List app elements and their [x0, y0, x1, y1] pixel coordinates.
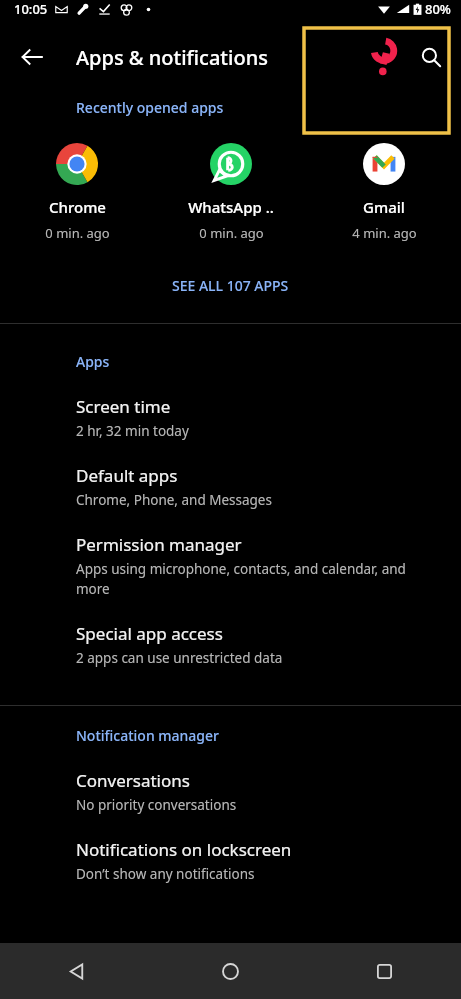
staticText: Special app access [76, 622, 223, 645]
staticText: WhatsApp .. [188, 197, 274, 217]
button[interactable]: Special app access [0, 620, 461, 689]
button[interactable]: Home [206, 947, 254, 995]
staticText: Screen time [76, 395, 171, 418]
staticText: Chrome [49, 197, 106, 217]
button[interactable]: Default apps [0, 462, 461, 531]
staticText: 80% [425, 0, 451, 18]
button[interactable]: WhatsApp .. [161, 141, 301, 244]
staticText: 4 min. ago [352, 224, 417, 242]
staticText: Gmail [363, 197, 405, 217]
staticText: Default apps [76, 464, 178, 487]
staticText: Apps & notifications [76, 44, 268, 71]
button[interactable]: Chrome [7, 141, 147, 244]
button[interactable]: Back [53, 947, 101, 995]
staticText: Don’t show any notifications [76, 865, 255, 883]
staticText: 0 min. ago [199, 224, 264, 242]
button[interactable]: Back [12, 37, 52, 77]
button[interactable]: SEE ALL 107 APPS [0, 270, 461, 301]
button[interactable]: Permission manager [0, 531, 461, 620]
button[interactable]: Recent apps [360, 947, 408, 995]
button[interactable]: Conversations [0, 767, 461, 836]
button[interactable]: Help [361, 34, 407, 80]
button[interactable]: Notifications on lockscreen [0, 836, 461, 905]
staticText: 2 hr, 32 min today [76, 422, 189, 440]
staticText: 2 apps can use unrestricted data [76, 649, 283, 667]
staticText: SEE ALL 107 APPS [172, 276, 289, 295]
button[interactable]: Screen time [0, 393, 461, 462]
staticText: Recently opened apps [76, 98, 224, 117]
staticText: Permission manager [76, 533, 242, 556]
staticText: Conversations [76, 769, 190, 792]
staticText: Notifications on lockscreen [76, 838, 292, 861]
staticText: Apps using microphone, contacts, and cal… [76, 560, 406, 598]
button[interactable]: Gmail [314, 141, 454, 244]
staticText: 10:05 [14, 0, 48, 18]
button[interactable]: Search [411, 37, 451, 77]
staticText: No priority conversations [76, 796, 237, 814]
staticText: 0 min. ago [45, 224, 110, 242]
staticText: Notification manager [76, 726, 220, 745]
staticText: Chrome, Phone, and Messages [76, 491, 272, 509]
staticText: Apps [76, 352, 110, 371]
